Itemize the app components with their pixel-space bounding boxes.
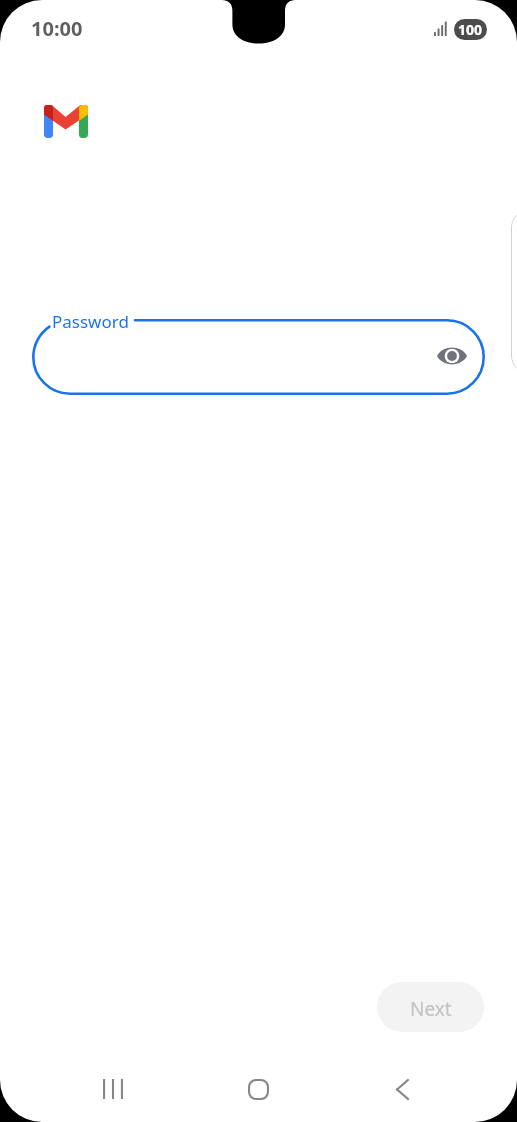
button[interactable]: Next <box>377 982 484 1032</box>
staticText: Next <box>410 996 452 1022</box>
staticText: 100 <box>458 20 483 39</box>
button[interactable]: Back <box>375 1062 429 1116</box>
button[interactable]: Recent apps <box>86 1062 140 1116</box>
staticText: Password <box>52 310 129 333</box>
button[interactable]: Password field <box>32 319 485 395</box>
staticText: 10:00 <box>31 15 83 42</box>
button[interactable]: Show password <box>428 332 476 380</box>
button[interactable]: Home <box>231 1062 285 1116</box>
